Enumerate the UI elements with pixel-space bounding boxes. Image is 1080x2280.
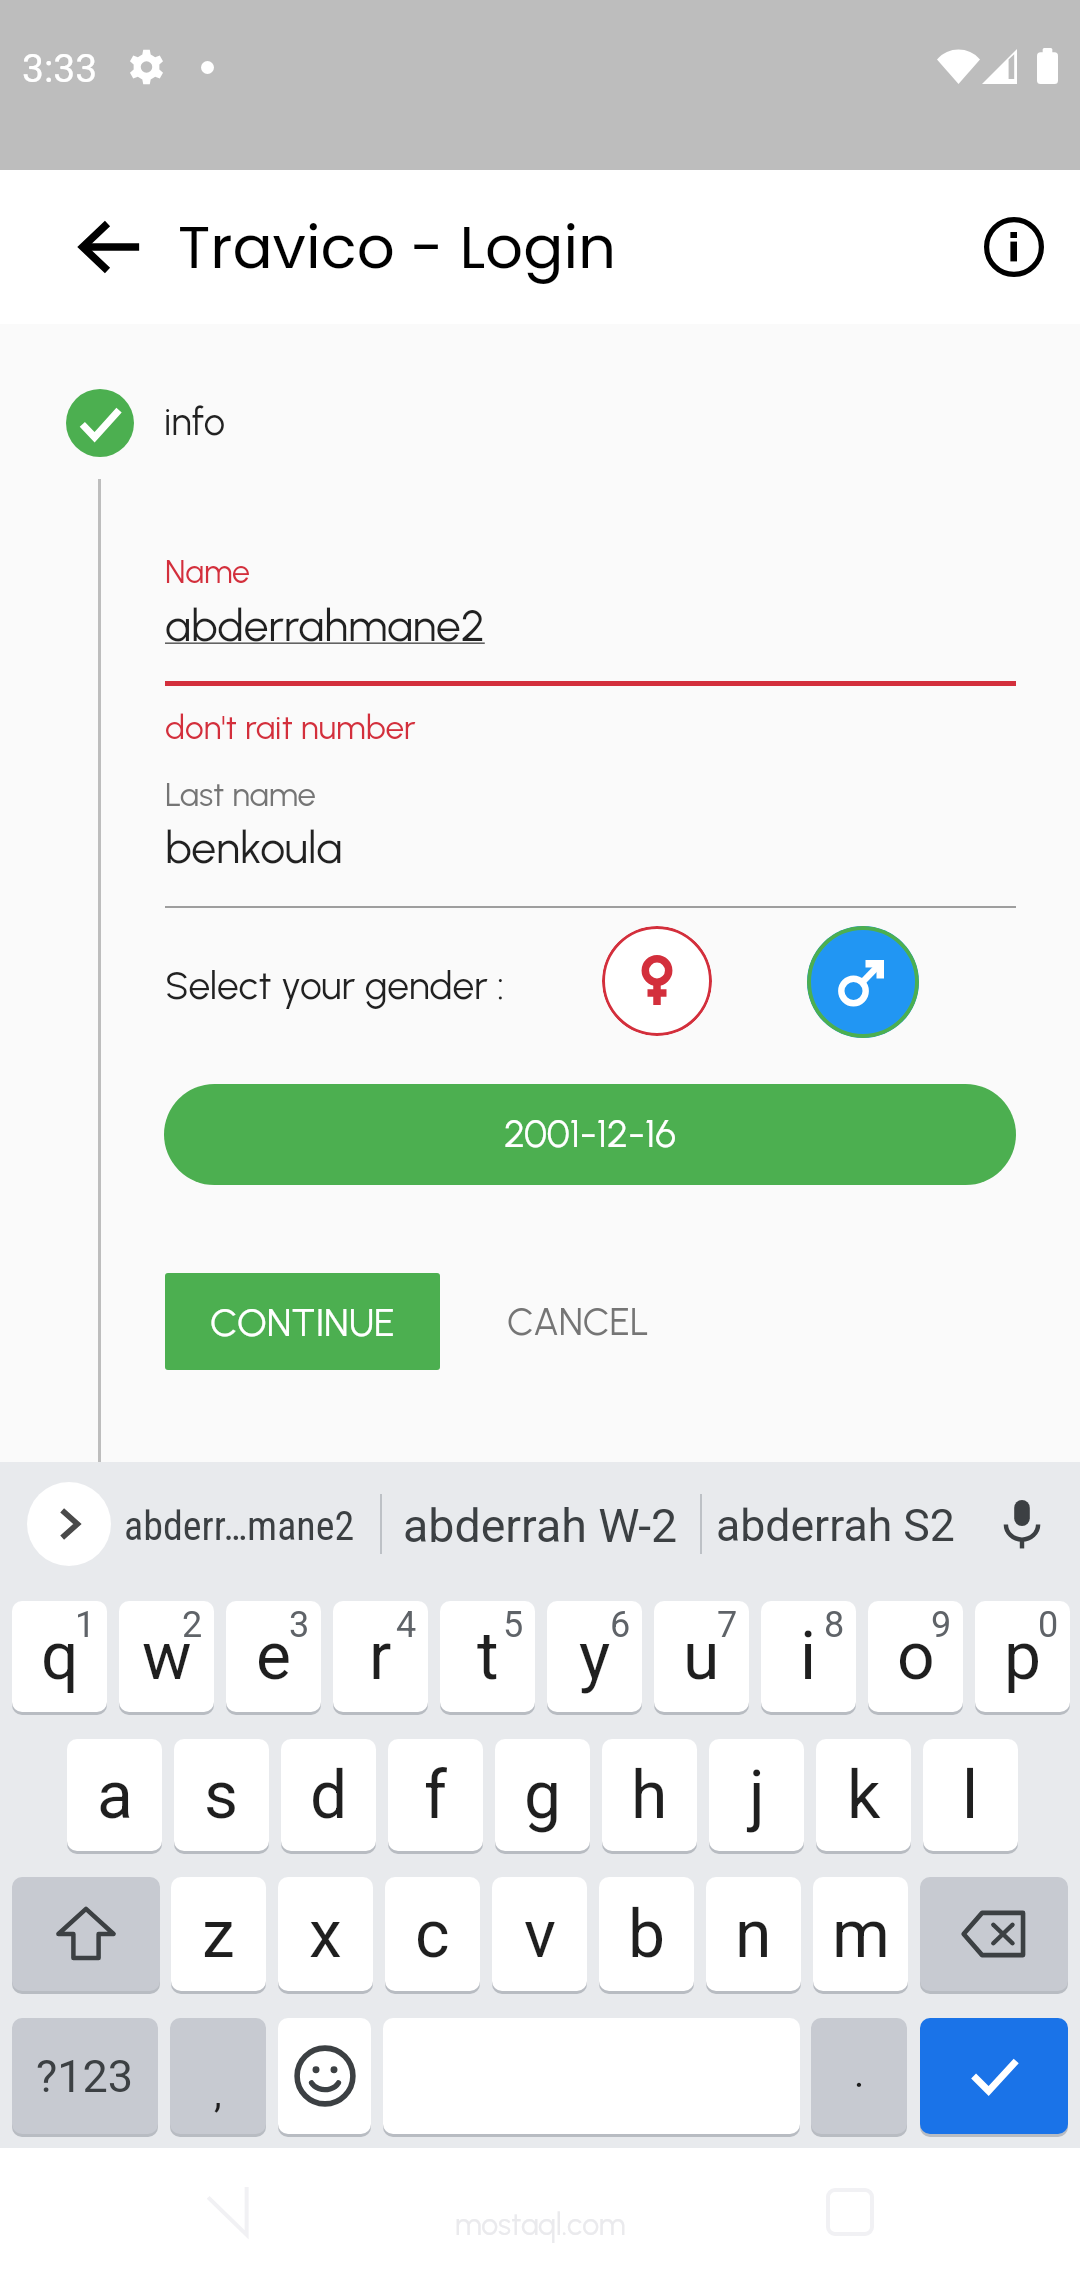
- button[interactable]: b: [599, 1877, 694, 1991]
- button[interactable]: t: [440, 1601, 535, 1712]
- staticText: a: [97, 1757, 133, 1834]
- button[interactable]: More suggestions: [27, 1482, 111, 1566]
- button[interactable]: Backspace: [920, 1877, 1068, 1991]
- button[interactable]: Period: [811, 2018, 907, 2134]
- staticText: d: [310, 1757, 348, 1834]
- button[interactable]: Emoji: [278, 2018, 371, 2134]
- button[interactable]: Info: [966, 199, 1062, 295]
- staticText: abderrah W-2: [403, 1499, 678, 1553]
- staticText: abderrah S2: [716, 1500, 955, 1552]
- button[interactable]: 2001-12-16: [164, 1084, 1016, 1185]
- button[interactable]: k: [816, 1739, 911, 1851]
- staticText: w: [142, 1618, 192, 1695]
- staticText: 2001-12-16: [504, 1110, 677, 1156]
- button[interactable]: Shift: [12, 1877, 160, 1991]
- staticText: Name: [165, 553, 251, 592]
- button[interactable]: Comma: [170, 2018, 266, 2134]
- staticText: f: [424, 1757, 447, 1834]
- staticText: Travico - Login: [178, 206, 617, 289]
- staticText: 1: [75, 1604, 96, 1646]
- staticText: 4: [396, 1604, 417, 1646]
- button[interactable]: a: [67, 1739, 162, 1851]
- button[interactable]: Back: [62, 199, 158, 295]
- button[interactable]: s: [174, 1739, 269, 1851]
- staticText: l: [962, 1757, 979, 1834]
- staticText: x: [309, 1896, 342, 1973]
- button[interactable]: w: [119, 1601, 214, 1712]
- button[interactable]: j: [709, 1739, 804, 1851]
- button[interactable]: Recent apps: [802, 2164, 898, 2260]
- staticText: i: [800, 1618, 817, 1695]
- staticText: j: [749, 1757, 765, 1834]
- button[interactable]: d: [281, 1739, 376, 1851]
- button[interactable]: e: [226, 1601, 321, 1712]
- staticText: k: [847, 1757, 881, 1834]
- staticText: e: [256, 1618, 291, 1695]
- staticText: ,: [214, 2071, 222, 2117]
- staticText: .: [854, 2051, 865, 2097]
- staticText: p: [1004, 1618, 1042, 1695]
- staticText: 2: [182, 1604, 203, 1646]
- staticText: don't rait number: [165, 707, 416, 747]
- button[interactable]: abderrah W-2: [403, 1484, 723, 1568]
- button[interactable]: o: [868, 1601, 963, 1712]
- button[interactable]: abderr…mane2: [124, 1484, 374, 1568]
- button[interactable]: x: [278, 1877, 373, 1991]
- staticText: t: [477, 1618, 499, 1695]
- staticText: g: [524, 1757, 562, 1834]
- staticText: h: [631, 1757, 668, 1834]
- button[interactable]: v: [492, 1877, 587, 1991]
- button[interactable]: c: [385, 1877, 480, 1991]
- button[interactable]: CONTINUE: [165, 1273, 440, 1370]
- button[interactable]: Enter: [920, 2018, 1068, 2134]
- staticText: CONTINUE: [210, 1299, 395, 1345]
- staticText: Select your gender :: [165, 962, 505, 1009]
- staticText: c: [415, 1896, 450, 1973]
- staticText: 3:33: [22, 46, 98, 92]
- staticText: n: [735, 1896, 772, 1973]
- button[interactable]: Male: [807, 926, 919, 1038]
- staticText: abderrahmane2: [165, 599, 485, 652]
- staticText: z: [202, 1896, 235, 1973]
- button[interactable]: m: [813, 1877, 908, 1991]
- staticText: m: [832, 1896, 890, 1973]
- staticText: s: [204, 1757, 239, 1834]
- staticText: CANCEL: [507, 1299, 649, 1344]
- staticText: 3: [289, 1604, 310, 1646]
- staticText: 7: [717, 1604, 738, 1646]
- button[interactable]: q: [12, 1601, 107, 1712]
- staticText: y: [579, 1618, 611, 1695]
- button[interactable]: p: [975, 1601, 1070, 1712]
- staticText: 0: [1038, 1604, 1059, 1646]
- staticText: benkoula: [165, 821, 343, 874]
- staticText: b: [628, 1896, 666, 1973]
- button[interactable]: CANCEL: [470, 1273, 685, 1370]
- button[interactable]: r: [333, 1601, 428, 1712]
- button[interactable]: abderrah S2: [716, 1484, 996, 1568]
- staticText: 6: [610, 1604, 631, 1646]
- button[interactable]: f: [388, 1739, 483, 1851]
- staticText: 5: [503, 1604, 524, 1646]
- button[interactable]: z: [171, 1877, 266, 1991]
- staticText: v: [524, 1896, 556, 1973]
- button[interactable]: Step info completed: [66, 389, 134, 457]
- button[interactable]: Voice input: [980, 1482, 1064, 1566]
- staticText: ?123: [36, 2050, 134, 2103]
- staticText: abderr…mane2: [124, 1503, 355, 1550]
- button[interactable]: Female: [602, 926, 712, 1036]
- button[interactable]: u: [654, 1601, 749, 1712]
- staticText: Last name: [165, 775, 316, 814]
- staticText: mostaql.com: [455, 2206, 626, 2242]
- button[interactable]: l: [923, 1739, 1018, 1851]
- button[interactable]: n: [706, 1877, 801, 1991]
- button[interactable]: g: [495, 1739, 590, 1851]
- button[interactable]: Symbols: [12, 2018, 158, 2134]
- staticText: u: [683, 1618, 720, 1695]
- button[interactable]: y: [547, 1601, 642, 1712]
- staticText: info: [164, 399, 226, 445]
- button[interactable]: h: [602, 1739, 697, 1851]
- staticText: r: [369, 1618, 392, 1695]
- button[interactable]: i: [761, 1601, 856, 1712]
